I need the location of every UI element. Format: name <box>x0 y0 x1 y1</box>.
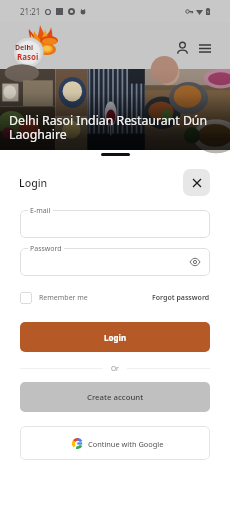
staticText: Or <box>111 364 119 373</box>
button[interactable]: Account <box>173 39 191 57</box>
button[interactable]: Login <box>20 322 210 352</box>
staticText: Continue with Google <box>88 439 164 449</box>
button[interactable]: Close <box>183 169 210 196</box>
staticText: 21:21 <box>20 6 41 17</box>
staticText: Password <box>30 244 62 254</box>
staticText: Delhi Rasoi Indian Restaurant Dún Laogha… <box>9 112 208 143</box>
button[interactable]: Forgot password <box>152 293 210 303</box>
button[interactable]: Create account <box>20 382 210 412</box>
button[interactable]: Menu <box>199 39 217 57</box>
staticText: E-mail <box>30 206 51 216</box>
button[interactable]: Remember me <box>20 292 88 304</box>
staticText: Login <box>19 176 48 190</box>
staticText: Login <box>104 332 127 343</box>
staticText: Delhi <box>15 43 34 53</box>
staticText: Remember me <box>39 293 88 303</box>
staticText: Create account <box>87 392 144 403</box>
button[interactable]: Continue with Google <box>20 426 210 460</box>
staticText: Rasoi <box>17 51 39 62</box>
